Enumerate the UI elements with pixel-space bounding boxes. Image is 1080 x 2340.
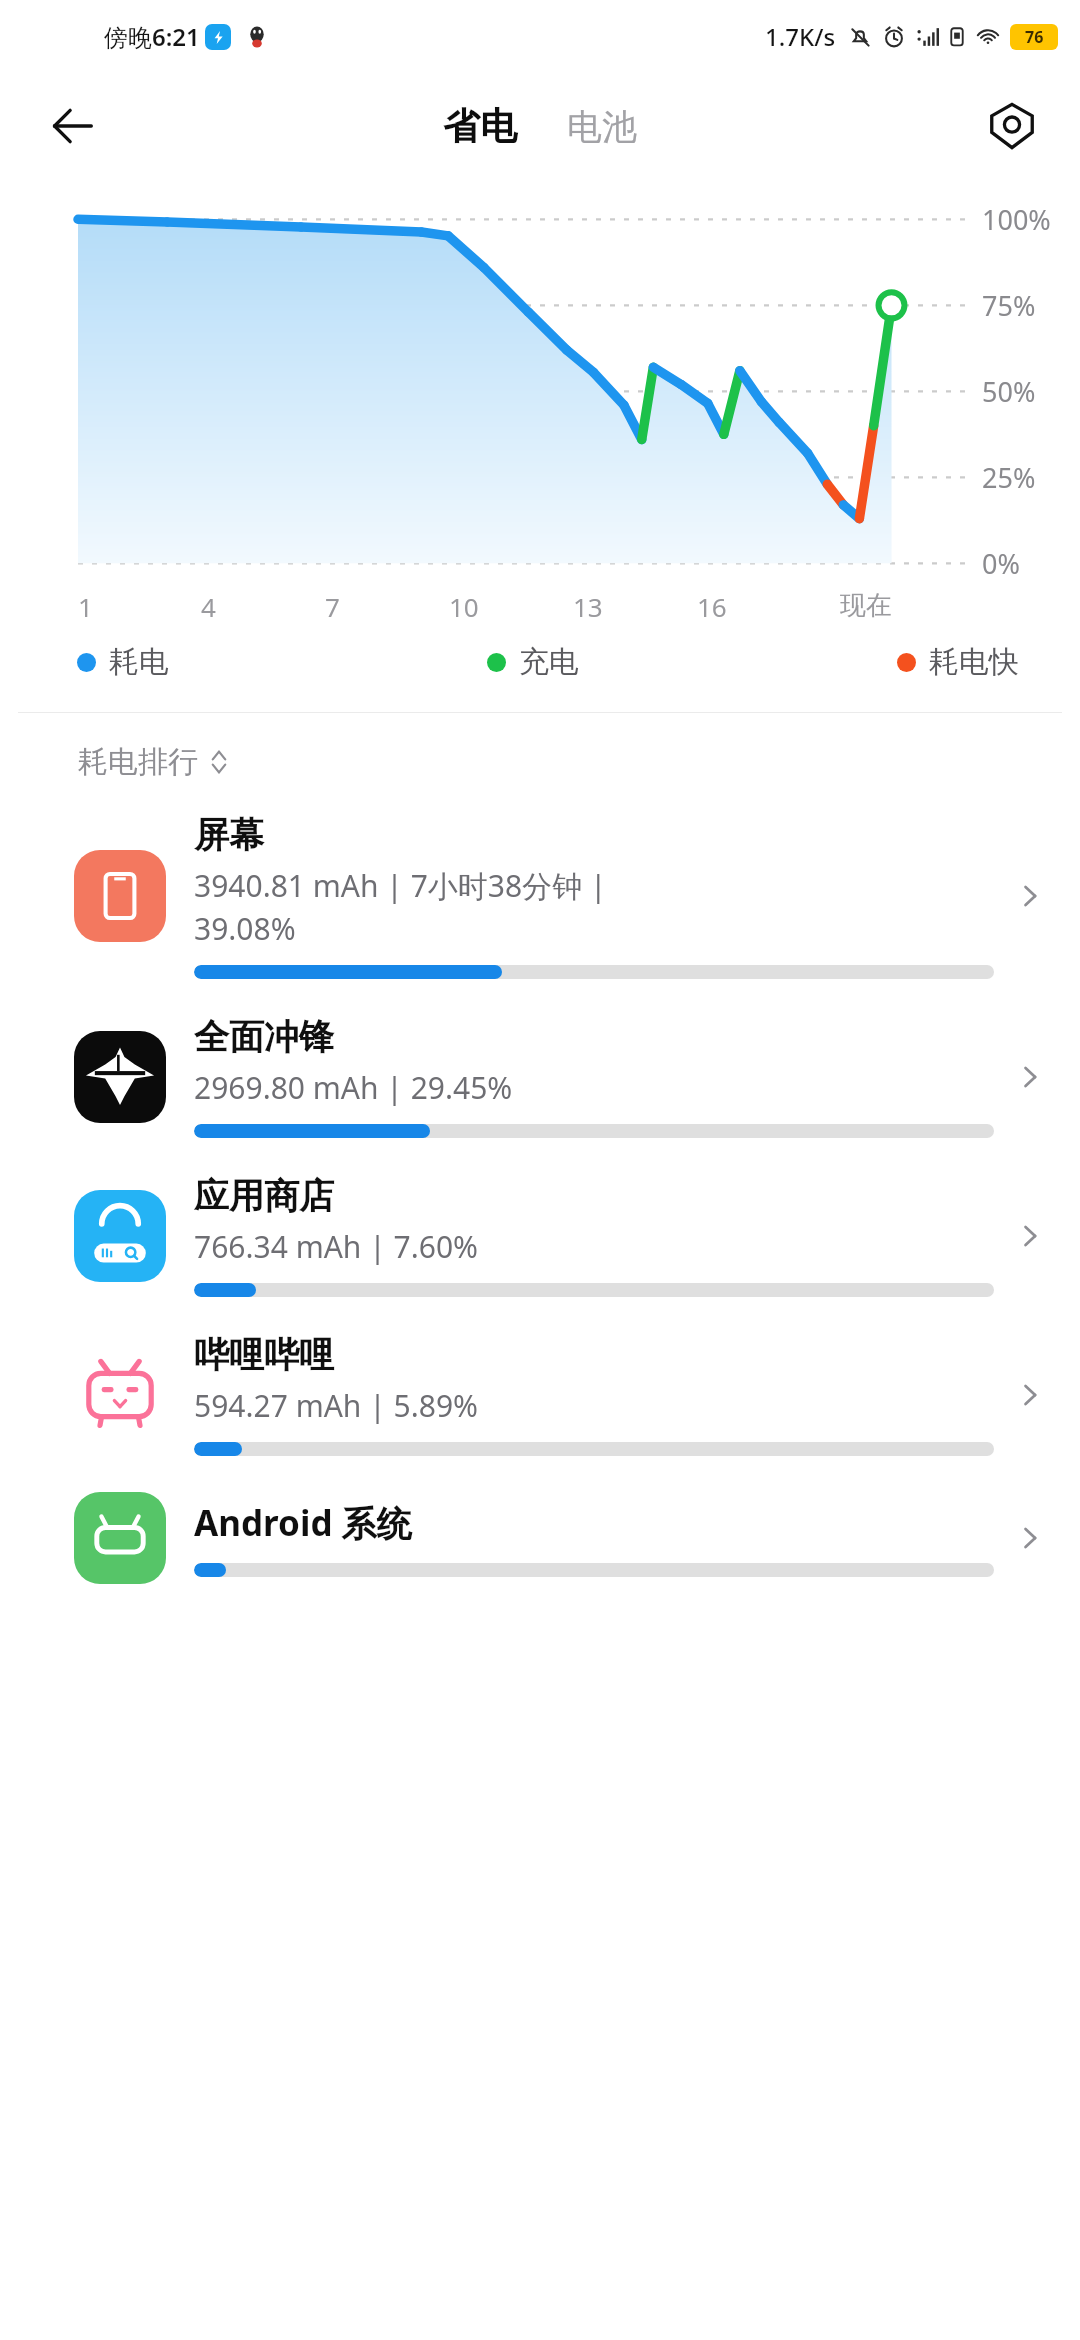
staticText: 13 xyxy=(573,589,603,624)
staticText: 电池 xyxy=(567,105,637,149)
staticText: 50% xyxy=(982,373,1036,410)
staticText: 省电 xyxy=(443,103,517,150)
staticText: 100% xyxy=(982,201,1051,238)
button[interactable]: Settings xyxy=(976,90,1048,162)
button[interactable]: 耗电 xyxy=(72,638,174,686)
button[interactable]: 耗电排行 xyxy=(74,735,236,789)
button[interactable]: 哔哩哔哩 xyxy=(0,1315,1080,1474)
button[interactable]: 电池 xyxy=(559,97,645,157)
button[interactable]: 充电 xyxy=(482,638,584,686)
staticText: 傍晚6:21 xyxy=(104,20,200,53)
staticText: 39.08% xyxy=(194,908,296,949)
button[interactable]: 耗电快 xyxy=(892,638,1024,686)
staticText: 594.27 mAh | 5.89% xyxy=(194,1385,478,1426)
staticText: 76 xyxy=(1025,26,1044,48)
button[interactable]: 屏幕 xyxy=(0,795,1080,997)
staticText: 哔哩哔哩 xyxy=(194,1333,334,1377)
staticText: 25% xyxy=(982,459,1036,496)
button[interactable]: 全面冲锋 xyxy=(0,997,1080,1156)
staticText: 10 xyxy=(449,589,479,624)
staticText: 应用商店 xyxy=(194,1174,334,1218)
staticText: 2969.80 mAh | 29.45% xyxy=(194,1067,513,1108)
button[interactable]: 省电 xyxy=(435,95,525,158)
staticText: 766.34 mAh | 7.60% xyxy=(194,1226,478,1267)
staticText: 充电 xyxy=(519,643,579,681)
staticText: 7 xyxy=(325,589,340,624)
staticText: 屏幕 xyxy=(194,813,264,857)
button[interactable]: Back xyxy=(36,90,108,162)
staticText: 75% xyxy=(982,287,1036,324)
staticText: 1 xyxy=(78,589,93,624)
staticText: 耗电 xyxy=(109,643,169,681)
staticText: 全面冲锋 xyxy=(194,1015,334,1059)
button[interactable]: 应用商店 xyxy=(0,1156,1080,1315)
staticText: 耗电排行 xyxy=(78,743,198,781)
staticText: 3940.81 mAh | 7小时38分钟 | xyxy=(194,865,607,906)
staticText: 1.7K/s xyxy=(765,20,836,53)
staticText: 4 xyxy=(201,589,216,624)
staticText: 现在 xyxy=(840,589,892,622)
staticText: Android 系统 xyxy=(194,1499,412,1547)
staticText: 耗电快 xyxy=(929,643,1019,681)
staticText: 0% xyxy=(982,545,1020,582)
button[interactable]: Android 系统 xyxy=(0,1474,1080,1602)
staticText: 16 xyxy=(697,589,727,624)
